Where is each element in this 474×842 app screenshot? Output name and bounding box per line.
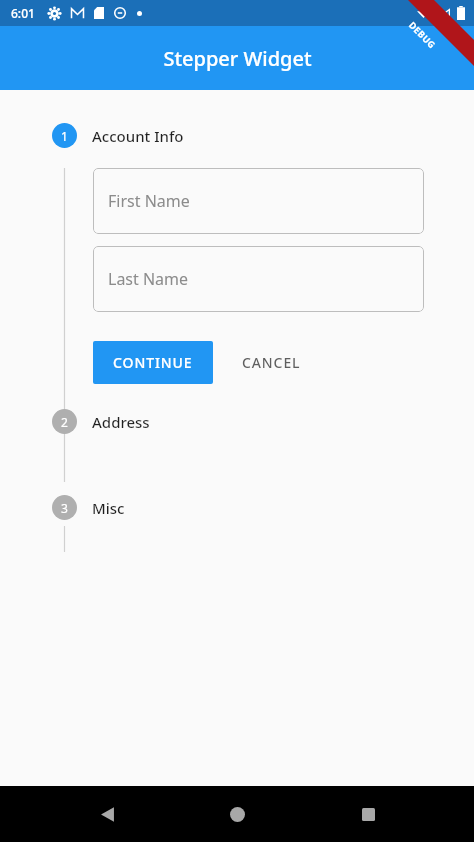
- staticText: CONTINUE: [113, 353, 193, 372]
- staticText: 6:01: [11, 5, 35, 21]
- staticText: 3: [61, 500, 68, 516]
- button[interactable]: First Name: [93, 168, 424, 234]
- button[interactable]: 3: [0, 493, 474, 522]
- staticText: Stepper Widget: [163, 45, 312, 72]
- staticText: 1: [61, 128, 68, 144]
- button[interactable]: Home: [213, 790, 261, 838]
- staticText: Last Name: [108, 268, 189, 290]
- button[interactable]: 1: [0, 121, 474, 150]
- staticText: DEBUG: [407, 19, 439, 51]
- button[interactable]: 2: [0, 407, 474, 436]
- button[interactable]: Last Name: [93, 246, 424, 312]
- button[interactable]: CANCEL: [228, 341, 315, 384]
- staticText: Account Info: [92, 126, 184, 146]
- staticText: Address: [92, 412, 150, 432]
- staticText: Misc: [92, 498, 125, 518]
- button[interactable]: Recent apps: [344, 790, 392, 838]
- staticText: First Name: [108, 190, 190, 212]
- button[interactable]: Back: [83, 790, 131, 838]
- staticText: CANCEL: [242, 353, 301, 372]
- button[interactable]: CONTINUE: [93, 341, 213, 384]
- staticText: 2: [61, 414, 68, 430]
